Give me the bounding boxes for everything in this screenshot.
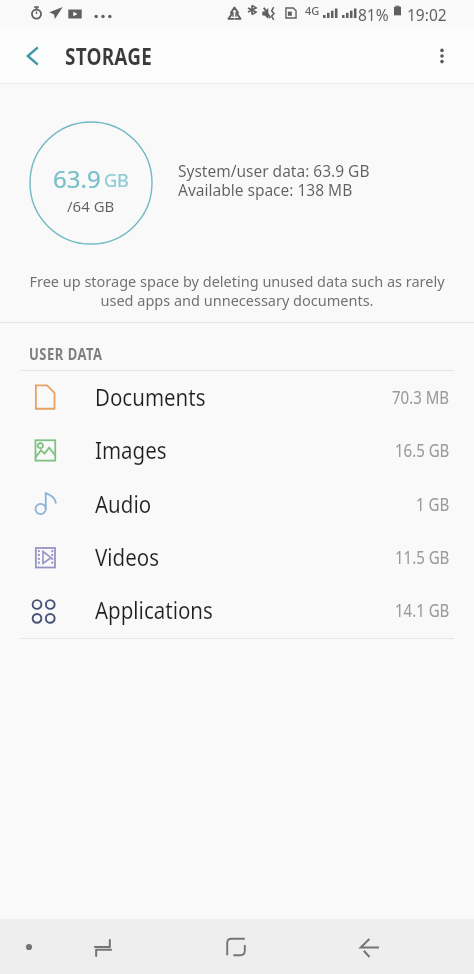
button[interactable]: Back — [347, 925, 391, 969]
button[interactable]: Recent apps — [81, 925, 125, 969]
staticText: STORAGE — [65, 41, 153, 73]
staticText: GB — [104, 168, 129, 193]
button[interactable]: Images — [0, 423, 474, 476]
staticText: /64 GB — [67, 196, 115, 216]
button[interactable]: Menu — [7, 925, 51, 969]
button[interactable]: Documents — [0, 370, 474, 423]
button[interactable]: Home — [214, 925, 258, 969]
staticText: 1 GB — [416, 492, 450, 516]
staticText: 81% — [358, 4, 389, 25]
button[interactable]: Navigate up — [12, 35, 54, 77]
button[interactable]: Audio — [0, 477, 474, 530]
staticText: 70.3 MB — [392, 385, 450, 409]
staticText: Available space: 138 MB — [178, 179, 353, 200]
staticText: Images — [95, 434, 167, 466]
staticText: 11.5 GB — [395, 545, 450, 569]
staticText: System/user data: 63.9 GB — [178, 160, 370, 181]
staticText: USER DATA — [29, 342, 103, 365]
staticText: 63.9 — [53, 162, 101, 195]
button[interactable]: Applications — [0, 583, 474, 636]
staticText: 4G — [305, 3, 320, 18]
staticText: 19:02 — [407, 4, 447, 25]
staticText: Applications — [95, 594, 213, 626]
button[interactable]: Videos — [0, 530, 474, 583]
staticText: 16.5 GB — [395, 438, 450, 462]
staticText: Free up storage space by deleting unused… — [14, 271, 460, 310]
button[interactable]: More options — [421, 35, 463, 77]
staticText: Documents — [95, 381, 206, 413]
staticText: Videos — [95, 541, 159, 573]
staticText: 14.1 GB — [395, 598, 450, 622]
staticText: Audio — [95, 488, 152, 520]
